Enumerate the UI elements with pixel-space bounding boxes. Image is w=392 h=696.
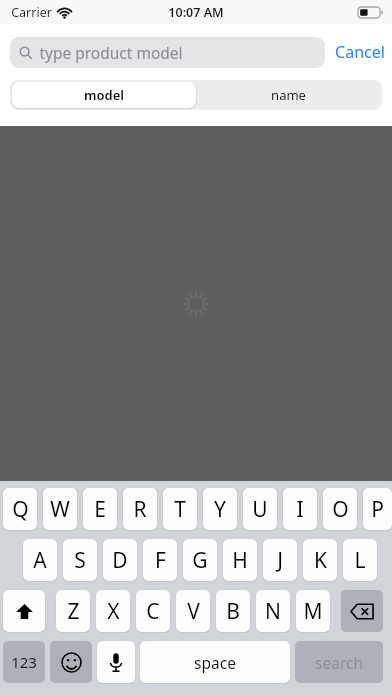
button[interactable]: S bbox=[63, 539, 97, 581]
button[interactable]: Dictation bbox=[97, 641, 135, 683]
button[interactable]: P bbox=[363, 488, 392, 530]
staticText: T bbox=[174, 495, 186, 524]
button[interactable]: Backspace bbox=[341, 590, 383, 632]
button[interactable]: Emoji bbox=[50, 641, 92, 683]
button[interactable]: M bbox=[296, 590, 330, 632]
staticText: Cancel bbox=[335, 41, 385, 63]
staticText: F bbox=[155, 546, 166, 575]
staticText: Carrier bbox=[11, 4, 52, 21]
staticText: A bbox=[33, 546, 47, 575]
button[interactable]: K bbox=[303, 539, 337, 581]
button[interactable]: Cancel bbox=[333, 34, 387, 70]
staticText: model bbox=[84, 86, 124, 104]
button[interactable]: B bbox=[216, 590, 250, 632]
button[interactable]: Z bbox=[56, 590, 90, 632]
staticText: name bbox=[271, 86, 306, 104]
staticText: search bbox=[315, 652, 363, 673]
button[interactable]: space bbox=[140, 641, 290, 683]
button[interactable]: U bbox=[243, 488, 277, 530]
button[interactable]: search bbox=[295, 641, 383, 683]
staticText: N bbox=[265, 597, 281, 626]
staticText: Z bbox=[67, 597, 80, 626]
staticText: C bbox=[146, 597, 160, 626]
button[interactable]: E bbox=[83, 488, 117, 530]
button[interactable]: A bbox=[23, 539, 57, 581]
button[interactable]: I bbox=[283, 488, 317, 530]
button[interactable]: Y bbox=[203, 488, 237, 530]
button[interactable]: L bbox=[343, 539, 377, 581]
button[interactable]: Shift bbox=[3, 590, 45, 632]
staticText: type product model bbox=[39, 42, 183, 63]
button[interactable]: T bbox=[163, 488, 197, 530]
button[interactable]: name bbox=[196, 82, 380, 108]
button[interactable]: D bbox=[103, 539, 137, 581]
staticText: K bbox=[314, 546, 327, 575]
staticText: 123 bbox=[11, 652, 37, 672]
staticText: Q bbox=[12, 495, 29, 524]
staticText: O bbox=[332, 495, 349, 524]
staticText: D bbox=[112, 546, 128, 575]
button[interactable]: type product model bbox=[10, 37, 325, 68]
staticText: B bbox=[226, 597, 240, 626]
button[interactable]: N bbox=[256, 590, 290, 632]
staticText: L bbox=[354, 546, 366, 575]
button[interactable]: R bbox=[123, 488, 157, 530]
staticText: E bbox=[94, 495, 106, 524]
staticText: R bbox=[133, 495, 147, 524]
staticText: U bbox=[252, 495, 268, 524]
staticText: 10:07 AM bbox=[168, 4, 224, 21]
staticText: Y bbox=[214, 495, 226, 524]
button[interactable]: X bbox=[96, 590, 130, 632]
button[interactable]: Q bbox=[3, 488, 37, 530]
button[interactable]: W bbox=[43, 488, 77, 530]
button[interactable]: 123 bbox=[3, 641, 45, 683]
button[interactable]: C bbox=[136, 590, 170, 632]
button[interactable]: G bbox=[183, 539, 217, 581]
staticText: W bbox=[50, 495, 70, 524]
staticText: S bbox=[74, 546, 86, 575]
staticText: H bbox=[232, 546, 248, 575]
staticText: V bbox=[187, 597, 200, 626]
button[interactable]: J bbox=[263, 539, 297, 581]
staticText: J bbox=[277, 546, 283, 575]
button[interactable]: model bbox=[12, 82, 196, 108]
button[interactable]: V bbox=[176, 590, 210, 632]
staticText: X bbox=[107, 597, 120, 626]
button[interactable]: O bbox=[323, 488, 357, 530]
staticText: P bbox=[371, 495, 384, 524]
staticText: space bbox=[194, 652, 236, 673]
staticText: M bbox=[303, 597, 323, 626]
staticText: G bbox=[192, 546, 208, 575]
staticText: I bbox=[296, 495, 304, 524]
button[interactable]: F bbox=[143, 539, 177, 581]
button[interactable]: H bbox=[223, 539, 257, 581]
